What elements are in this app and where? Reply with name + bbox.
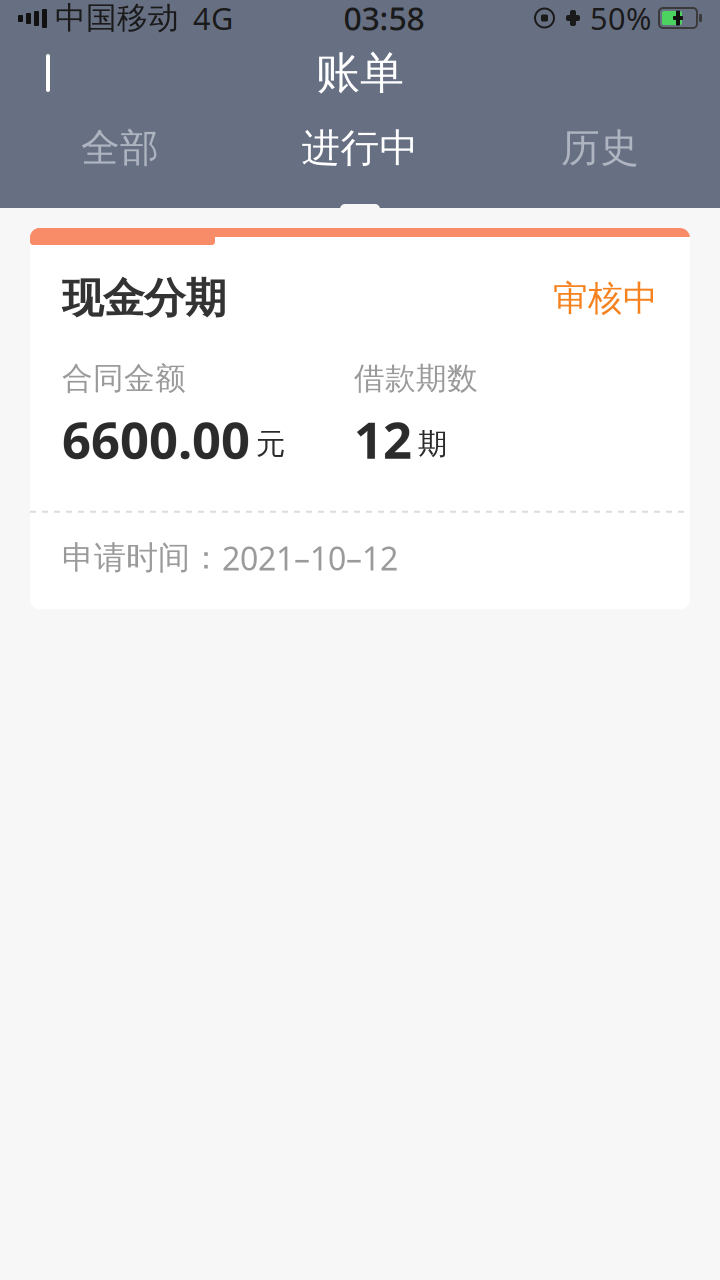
staticText: 历史 (561, 124, 639, 172)
button[interactable]: 历史 (480, 110, 720, 186)
staticText: 2021–10–12 (222, 537, 398, 579)
staticText: 全部 (81, 124, 159, 172)
button[interactable]: Back (0, 36, 84, 110)
staticText: 申请时间： (62, 538, 222, 578)
staticText: 4G (193, 0, 233, 38)
staticText: 借款期数 (354, 360, 478, 397)
staticText: 中国移动 (55, 0, 179, 37)
button[interactable]: 进行中 (240, 110, 480, 186)
staticText: 进行中 (301, 124, 418, 172)
button[interactable]: 现金分期 (30, 228, 690, 609)
staticText: 期 (418, 426, 447, 462)
staticText: 合同金额 (62, 360, 186, 397)
staticText: 审核中 (553, 277, 658, 320)
staticText: 12 (354, 405, 412, 473)
button[interactable]: 全部 (0, 110, 240, 186)
staticText: 6600.00 (62, 405, 250, 473)
staticText: 03:58 (343, 0, 424, 39)
staticText: 账单 (316, 46, 404, 100)
staticText: 现金分期 (62, 273, 226, 324)
staticText: 元 (256, 426, 285, 462)
staticText: 50% (590, 0, 651, 38)
